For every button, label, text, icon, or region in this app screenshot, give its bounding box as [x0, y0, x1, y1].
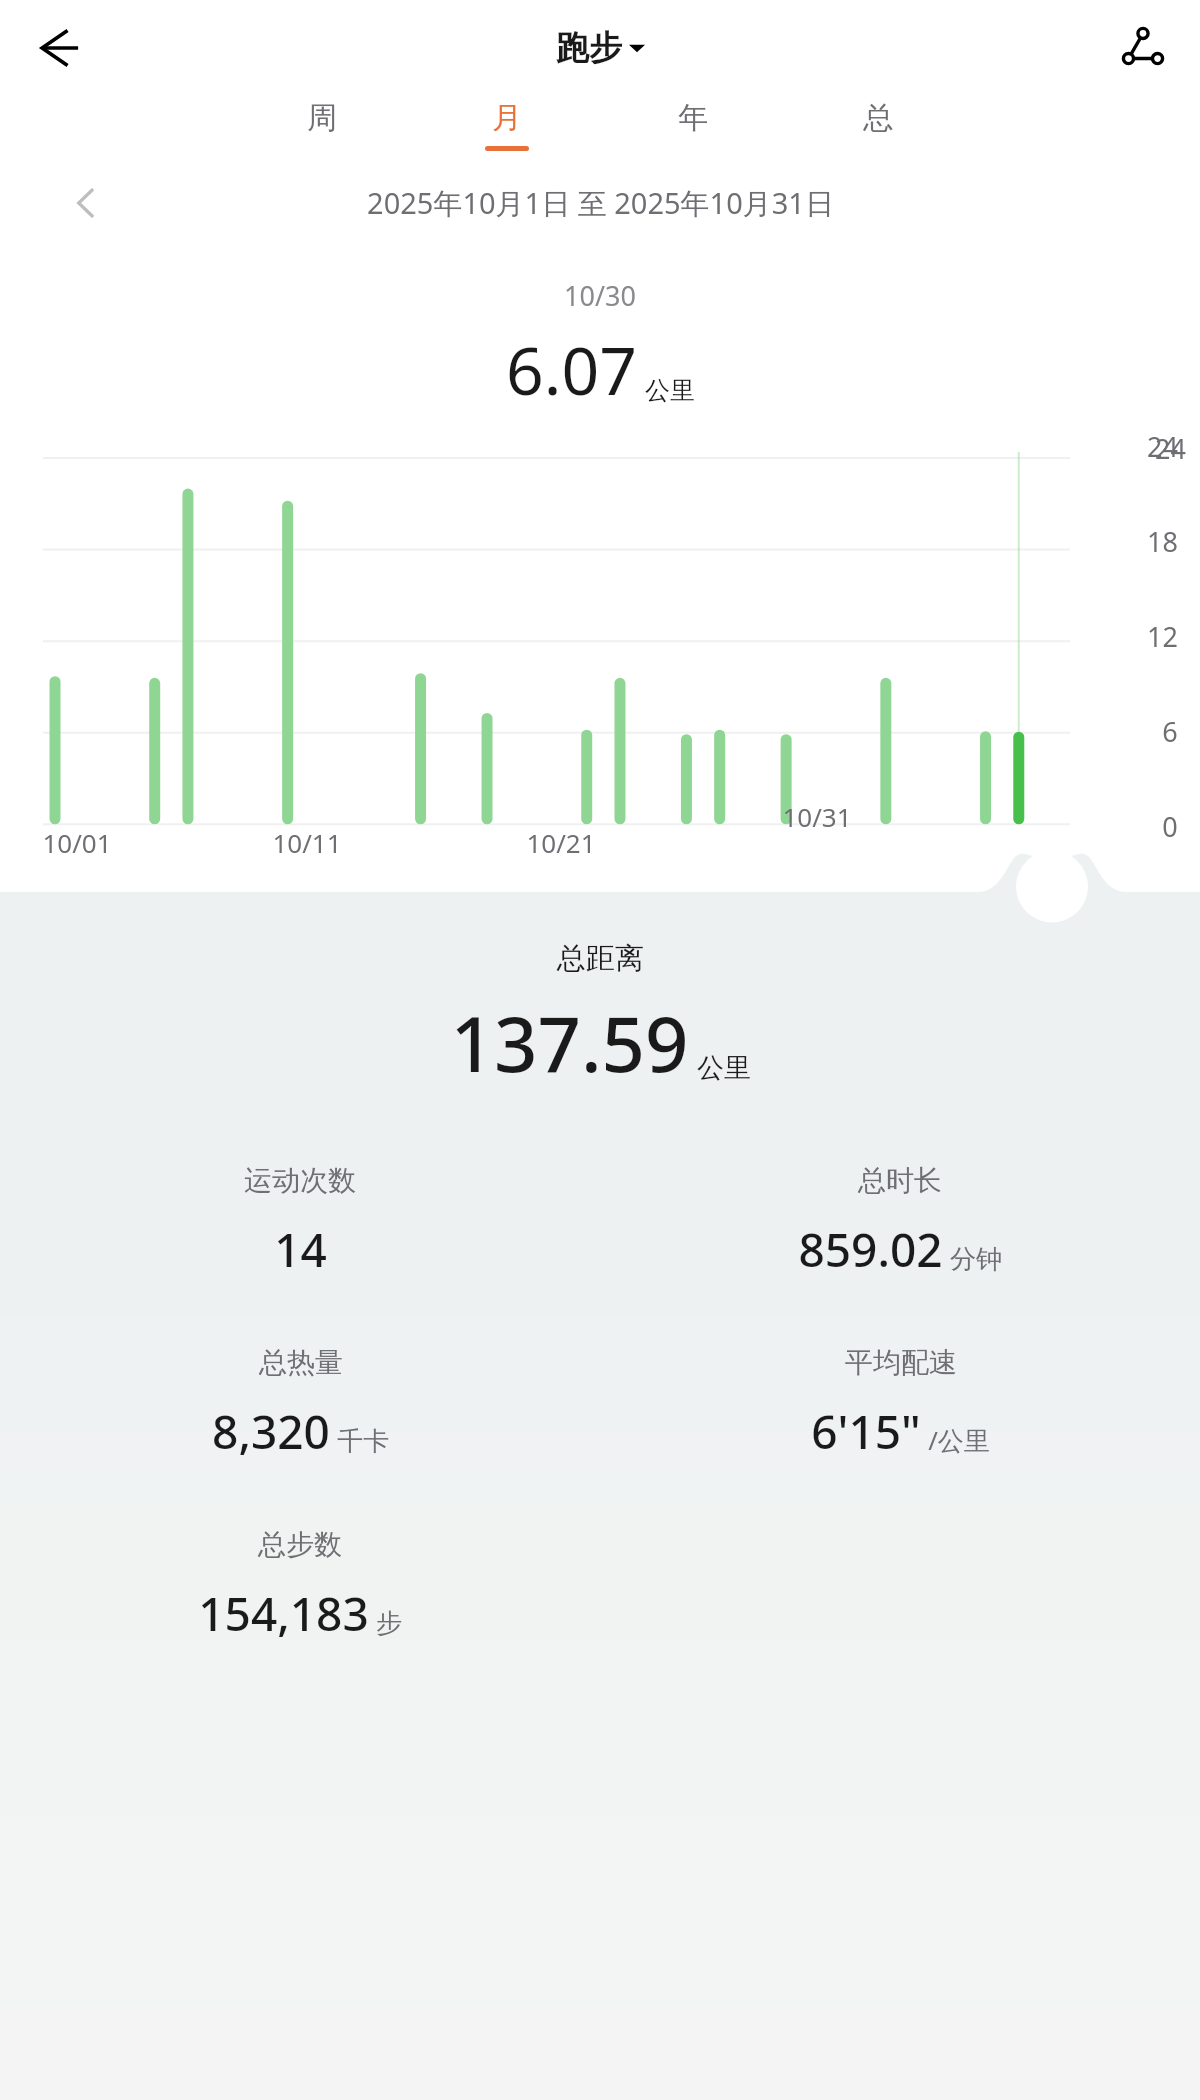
staticText: 平均配速	[845, 1345, 957, 1380]
button[interactable]: Previous period	[58, 174, 116, 232]
staticText: 2025年10月1日 至 2025年10月31日	[367, 183, 834, 223]
button[interactable]: 平均配速	[797, 1341, 1004, 1467]
staticText: 年	[678, 99, 708, 137]
button[interactable]: 总	[846, 95, 910, 155]
button[interactable]: 年	[661, 95, 725, 155]
button[interactable]: Share	[1106, 11, 1180, 85]
staticText: 6	[1162, 713, 1178, 750]
staticText: 总	[863, 99, 893, 137]
button[interactable]: 总时长	[784, 1159, 1016, 1285]
button[interactable]: Back	[20, 11, 94, 85]
staticText: 859.02	[798, 1218, 943, 1281]
staticText: 公里	[645, 375, 695, 406]
staticText: 137.59	[450, 991, 689, 1095]
staticText: 12	[1147, 618, 1178, 655]
button[interactable]: 跑步	[556, 27, 645, 69]
button[interactable]: 总步数	[184, 1523, 416, 1649]
staticText: 月	[492, 99, 522, 137]
button[interactable]: 周	[290, 95, 354, 155]
button[interactable]: 总热量	[198, 1341, 403, 1467]
staticText: 10/21	[526, 825, 596, 860]
staticText: 6'15"	[811, 1400, 921, 1463]
staticText: 24	[1147, 428, 1178, 465]
staticText: 0	[1162, 808, 1178, 845]
staticText: /公里	[928, 1422, 990, 1458]
staticText: 10/11	[272, 825, 342, 860]
staticText: 154,183	[198, 1582, 369, 1645]
staticText: 千卡	[337, 1425, 389, 1458]
staticText: 总距离	[557, 940, 644, 977]
staticText: 24	[1155, 430, 1186, 467]
staticText: 总热量	[259, 1345, 343, 1380]
staticText: 10/01	[42, 825, 112, 860]
staticText: 10/30	[564, 277, 636, 314]
staticText: 步	[376, 1607, 402, 1640]
staticText: 6.07	[506, 324, 637, 414]
staticText: 总时长	[858, 1163, 942, 1198]
staticText: 10/31	[782, 799, 852, 834]
staticText: 18	[1147, 523, 1178, 560]
staticText: 14	[274, 1218, 327, 1281]
staticText: 周	[307, 99, 337, 137]
staticText: 跑步	[556, 27, 622, 69]
staticText: 分钟	[950, 1243, 1002, 1276]
button[interactable]: 运动次数	[230, 1159, 370, 1285]
staticText: 运动次数	[244, 1163, 356, 1198]
staticText: 8,320	[212, 1400, 330, 1463]
staticText: 总步数	[258, 1527, 342, 1562]
button[interactable]: 月	[475, 95, 539, 155]
staticText: 公里	[697, 1051, 751, 1085]
